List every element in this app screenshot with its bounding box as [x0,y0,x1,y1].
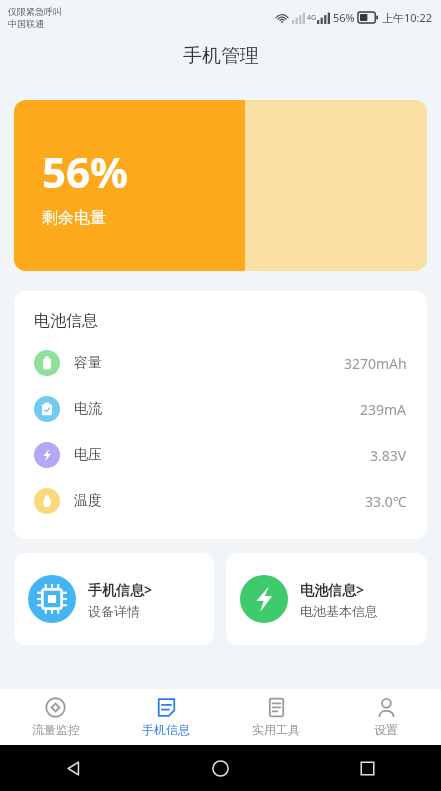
staticText: 56% [42,143,128,200]
button[interactable]: 电压 [34,439,407,471]
staticText: 4G [307,13,317,23]
staticText: 中国联通 [8,18,44,29]
staticText: 电压 [74,446,102,464]
button[interactable]: Home [147,745,294,791]
button[interactable]: 56% [14,100,427,271]
staticText: 容量 [74,354,102,372]
button[interactable]: 设置 [331,689,441,745]
staticText: 温度 [74,492,102,510]
button[interactable]: Recents [294,745,441,791]
button[interactable]: 电池信息> [226,553,427,645]
staticText: 手机信息 [142,722,190,737]
staticText: 电池基本信息 [300,603,378,619]
button[interactable]: 温度 [34,485,407,517]
staticText: 剩余电量 [42,208,106,228]
staticText: 设置 [374,722,398,737]
staticText: 56% [333,10,355,25]
staticText: 手机信息> [88,580,153,599]
staticText: 上午10:22 [382,10,433,25]
button[interactable]: Back [0,745,147,791]
staticText: 电流 [74,400,102,418]
button[interactable]: 手机信息 [111,689,221,745]
staticText: 电池信息 [34,311,98,331]
button[interactable]: 实用工具 [221,689,331,745]
staticText: 流量监控 [32,722,80,737]
staticText: 手机管理 [183,44,259,68]
staticText: 3.83V [370,446,407,465]
staticText: 实用工具 [252,722,300,737]
staticText: 33.0℃ [365,492,407,511]
button[interactable]: 流量监控 [0,689,111,745]
staticText: 电池信息> [300,580,365,599]
button[interactable]: 电流 [34,393,407,425]
staticText: 3270mAh [344,354,407,373]
button[interactable]: 手机信息> [14,553,214,645]
button[interactable]: 容量 [34,347,407,379]
staticText: 239mA [360,400,407,419]
staticText: 仅限紧急呼叫 [8,6,62,17]
staticText: 设备详情 [88,603,140,619]
